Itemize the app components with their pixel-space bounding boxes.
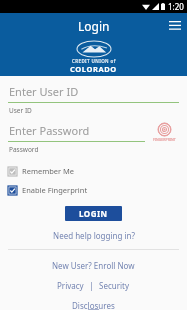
staticText: Security — [99, 280, 130, 291]
button[interactable]: Need help logging in? — [51, 228, 137, 243]
button[interactable]: Fingerprint login — [149, 123, 179, 142]
staticText: Enter User ID — [9, 84, 79, 99]
button[interactable]: Enter Password — [8, 123, 145, 154]
button[interactable]: Privacy — [56, 279, 85, 292]
staticText: | — [85, 280, 98, 291]
button[interactable]: LOGIN — [65, 206, 122, 221]
button[interactable]: Security — [98, 279, 131, 292]
staticText: Need help logging in? — [53, 230, 135, 241]
staticText: Privacy — [57, 280, 84, 291]
staticText: CREDIT UNION of — [72, 58, 116, 64]
staticText: COLORADO — [70, 64, 117, 74]
staticText: Enable Fingerprint — [22, 185, 88, 195]
button[interactable]: Enter User ID — [8, 84, 179, 115]
staticText: FINGERPRINT — [153, 137, 176, 142]
staticText: 1:20 — [168, 1, 184, 12]
button[interactable]: Menu — [162, 13, 187, 38]
staticText: Disclosures — [72, 300, 115, 309]
button[interactable]: Disclosures — [71, 299, 116, 310]
button[interactable]: Remember Me — [8, 166, 179, 176]
staticText: LOGIN — [79, 208, 108, 219]
button[interactable]: New User? Enroll Now — [51, 259, 136, 272]
staticText: Login — [78, 18, 110, 34]
staticText: Password — [9, 145, 39, 154]
button[interactable]: Enable Fingerprint — [8, 185, 179, 195]
staticText: User ID — [9, 106, 32, 115]
staticText: Remember Me — [22, 166, 75, 176]
staticText: Enter Password — [9, 123, 90, 138]
staticText: New User? Enroll Now — [52, 260, 135, 271]
